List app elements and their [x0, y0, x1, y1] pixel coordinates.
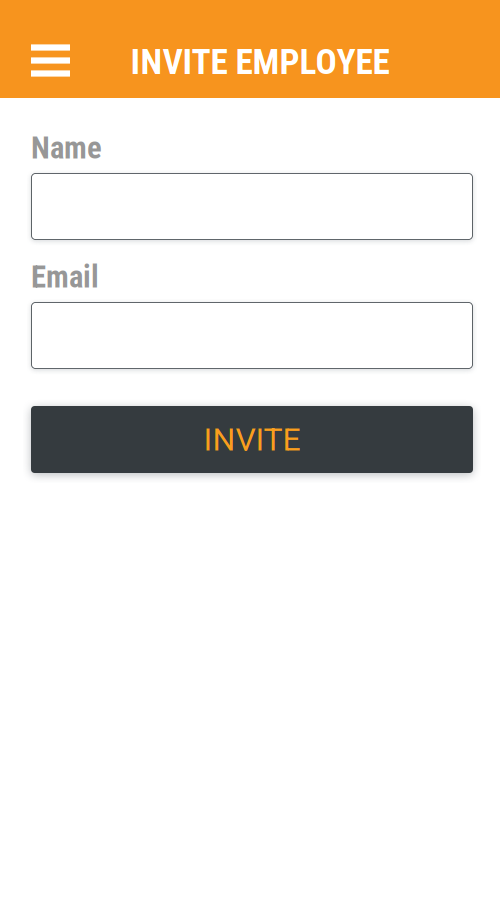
staticText: Email: [31, 259, 99, 295]
staticText: Name: [31, 130, 102, 166]
button[interactable]: Email: [31, 302, 473, 369]
staticText: INVITE: [203, 421, 300, 458]
button[interactable]: Name: [31, 173, 473, 240]
button[interactable]: Menu: [0, 38, 84, 86]
button[interactable]: INVITE: [31, 406, 473, 473]
staticText: INVITE EMPLOYEE: [130, 41, 389, 83]
